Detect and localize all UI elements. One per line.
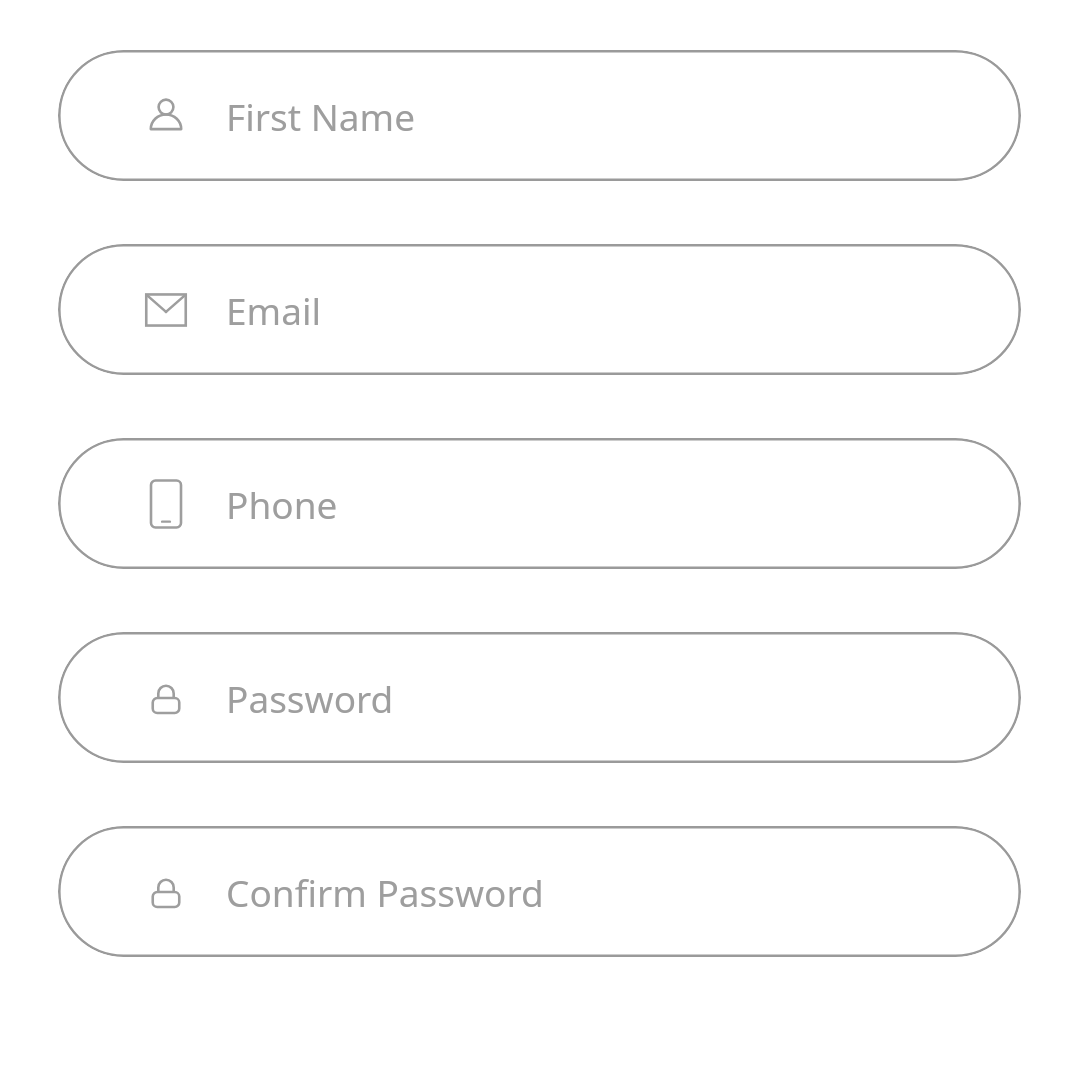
staticText: Phone	[226, 479, 338, 529]
button[interactable]: Confirm Password	[58, 826, 1021, 957]
button[interactable]: First Name	[58, 50, 1021, 181]
button[interactable]: Email	[58, 244, 1021, 375]
staticText: First Name	[226, 91, 416, 141]
staticText: Password	[226, 673, 394, 723]
staticText: Email	[226, 285, 322, 335]
button[interactable]: Phone	[58, 438, 1021, 569]
button[interactable]: Password	[58, 632, 1021, 763]
staticText: Confirm Password	[226, 867, 544, 917]
